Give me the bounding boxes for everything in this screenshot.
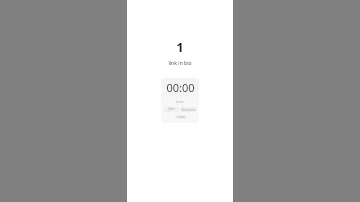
button[interactable]: Start timer: [164, 107, 179, 112]
staticText: 1: [176, 38, 184, 56]
button[interactable]: Stop timer: [181, 107, 196, 112]
button[interactable]: 00:00: [161, 78, 199, 123]
staticText: reset: [177, 115, 185, 119]
button[interactable]: reset: [175, 115, 186, 119]
staticText: Start timer: [164, 107, 179, 112]
staticText: 00:00: [166, 80, 195, 95]
staticText: timer: [176, 100, 184, 104]
staticText: link in bio: [168, 60, 192, 67]
staticText: Stop timer: [181, 108, 196, 112]
